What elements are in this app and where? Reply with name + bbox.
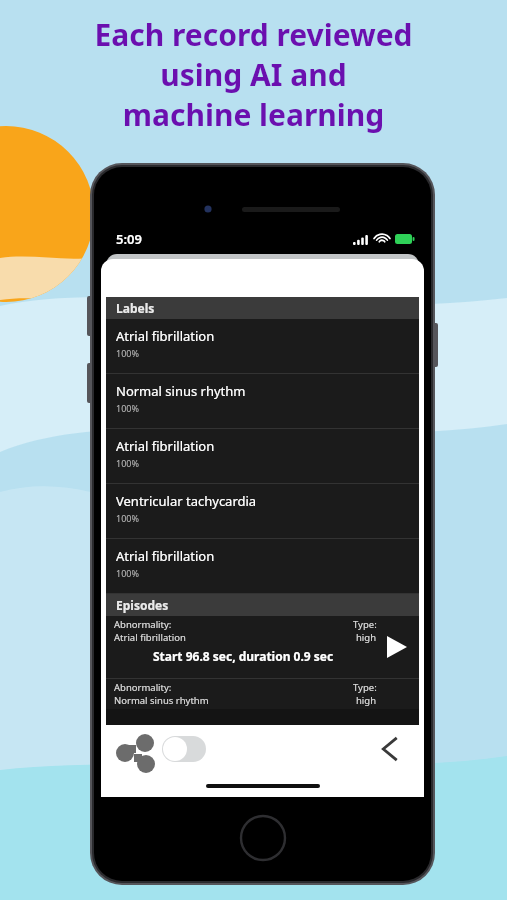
staticText: Atrial fibrillation bbox=[116, 437, 215, 455]
staticText: Normal sinus rhythm bbox=[114, 694, 209, 707]
staticText: Atrial fibrillation bbox=[116, 547, 215, 565]
button[interactable]: Normal sinus rhythm bbox=[106, 374, 419, 428]
staticText: Start 96.8 sec, duration 0.9 sec bbox=[153, 648, 334, 664]
staticText: 100% bbox=[116, 347, 139, 359]
button[interactable]: Toggle bbox=[162, 736, 206, 762]
staticText: Abnormality: bbox=[114, 681, 172, 694]
staticText: Type: bbox=[353, 618, 377, 631]
staticText: Atrial fibrillation bbox=[114, 631, 186, 644]
button[interactable]: Back bbox=[371, 730, 409, 768]
staticText: high bbox=[356, 694, 377, 707]
staticText: Normal sinus rhythm bbox=[116, 382, 246, 400]
button[interactable]: Abnormality: bbox=[106, 679, 419, 709]
staticText: Ventricular tachycardia bbox=[116, 492, 257, 510]
staticText: 100% bbox=[116, 512, 139, 524]
button[interactable]: Ventricular tachycardia bbox=[106, 484, 419, 538]
button[interactable]: Abnormality: bbox=[106, 616, 419, 678]
staticText: 100% bbox=[116, 402, 139, 414]
button[interactable]: Atrial fibrillation bbox=[106, 319, 419, 373]
button[interactable]: Share bbox=[114, 731, 156, 767]
button[interactable]: Atrial fibrillation bbox=[106, 539, 419, 593]
staticText: Labels bbox=[116, 300, 155, 316]
staticText: Episodes bbox=[116, 597, 169, 613]
staticText: Atrial fibrillation bbox=[116, 327, 215, 345]
button[interactable]: Atrial fibrillation bbox=[106, 429, 419, 483]
staticText: 100% bbox=[116, 457, 139, 469]
staticText: 5:09 bbox=[116, 230, 142, 248]
staticText: Each record reviewed using AI and machin… bbox=[0, 14, 507, 135]
button[interactable]: Play bbox=[379, 630, 413, 664]
staticText: Abnormality: bbox=[114, 618, 172, 631]
staticText: high bbox=[356, 631, 377, 644]
staticText: Type: bbox=[353, 681, 377, 694]
staticText: 100% bbox=[116, 567, 139, 579]
